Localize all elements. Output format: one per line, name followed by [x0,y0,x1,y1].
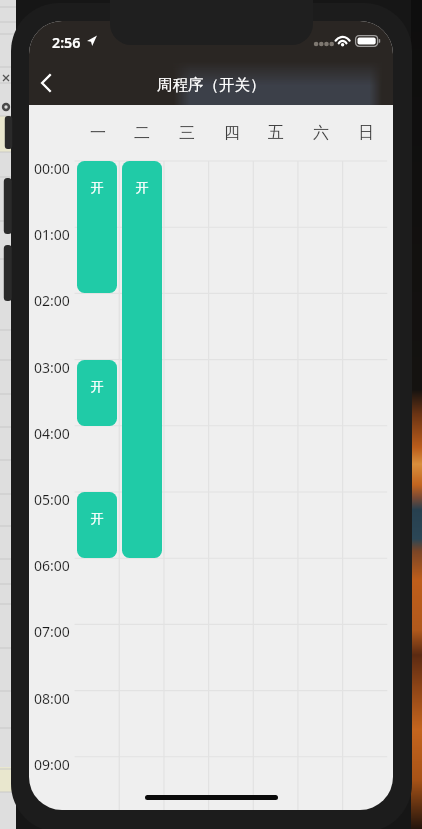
staticText: 四 [224,123,240,143]
staticText: 开 [77,510,117,526]
staticText: 03:00 [34,358,70,377]
button[interactable]: 一 [75,115,120,151]
staticText: 2:56 [52,33,81,52]
button[interactable]: 三 [164,115,209,151]
button[interactable]: Back [29,62,73,104]
staticText: 二 [134,123,150,143]
staticText: 00:00 [34,159,70,178]
staticText: 01:00 [34,225,70,244]
staticText: 三 [179,123,195,143]
staticText: 开 [77,378,117,394]
staticText: 五 [268,123,284,143]
button[interactable]: 二 [119,115,164,151]
button[interactable]: 六 [298,115,343,151]
staticText: 08:00 [34,689,70,708]
staticText: 06:00 [34,556,70,575]
staticText: 一 [90,123,106,143]
staticText: 04:00 [34,424,70,443]
staticText: 02:00 [34,291,70,310]
staticText: 六 [313,123,329,143]
staticText: 05:00 [34,490,70,509]
staticText: 日 [358,123,374,143]
staticText: 开 [122,179,162,195]
button[interactable]: 开 [122,161,162,558]
button[interactable]: 开 [77,360,117,426]
button[interactable]: 开 [77,161,117,293]
button[interactable]: 五 [253,115,298,151]
staticText: 开 [77,179,117,195]
button[interactable]: 日 [343,115,388,151]
staticText: 09:00 [34,755,70,774]
staticText: 07:00 [34,622,70,641]
button[interactable]: 四 [209,115,254,151]
button[interactable]: 开 [77,492,117,558]
staticText: 周程序（开关） [157,75,266,95]
